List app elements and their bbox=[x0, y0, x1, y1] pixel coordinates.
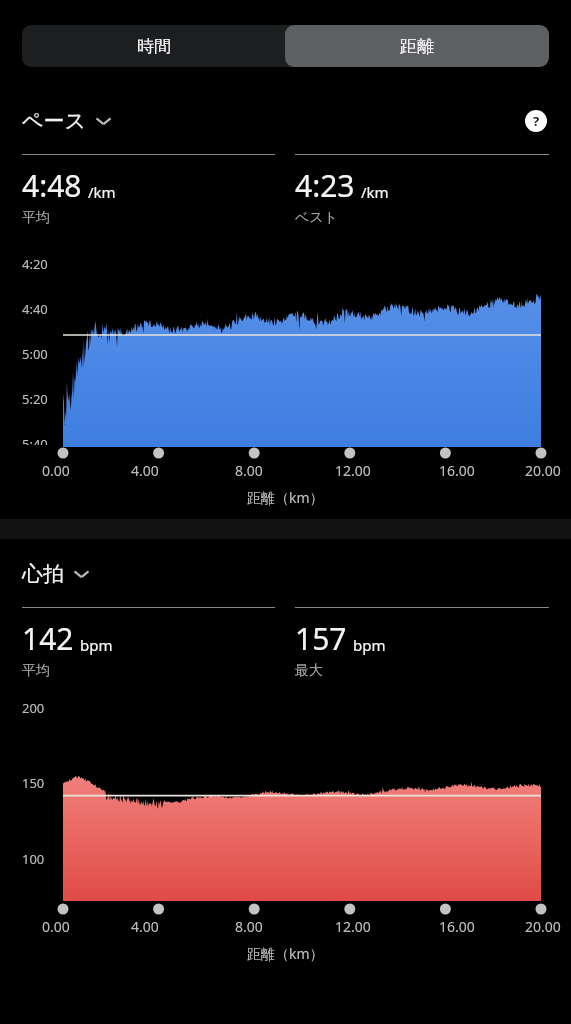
staticText: 距離（km） bbox=[247, 488, 324, 507]
staticText: 0.00 bbox=[42, 461, 70, 480]
button[interactable]: 距離 bbox=[285, 25, 549, 67]
staticText: 4:40 bbox=[22, 300, 48, 318]
staticText: 距離 bbox=[400, 36, 434, 57]
staticText: ベスト bbox=[295, 209, 338, 227]
staticText: bpm bbox=[353, 635, 386, 655]
staticText: 16.00 bbox=[439, 461, 475, 480]
button[interactable]: Help bbox=[523, 108, 549, 134]
staticText: 157 bbox=[295, 618, 347, 659]
staticText: 8.00 bbox=[235, 917, 263, 936]
staticText: /km bbox=[88, 182, 116, 202]
staticText: 時間 bbox=[137, 36, 171, 57]
staticText: 0.00 bbox=[42, 917, 70, 936]
staticText: 5:40 bbox=[22, 435, 48, 445]
staticText: 平均 bbox=[22, 662, 50, 680]
button[interactable]: 心拍 bbox=[22, 561, 90, 587]
staticText: 100 bbox=[22, 850, 45, 868]
staticText: 20.00 bbox=[525, 461, 561, 480]
staticText: 5:00 bbox=[22, 345, 48, 363]
staticText: 8.00 bbox=[235, 461, 263, 480]
staticText: 距離（km） bbox=[247, 944, 324, 963]
staticText: ペース bbox=[22, 108, 86, 134]
staticText: 4:23 bbox=[295, 165, 355, 206]
staticText: 4:20 bbox=[22, 255, 48, 273]
staticText: /km bbox=[361, 182, 389, 202]
staticText: 最大 bbox=[295, 662, 323, 680]
staticText: 平均 bbox=[22, 209, 50, 227]
button[interactable]: ペース bbox=[22, 108, 112, 134]
staticText: 4.00 bbox=[131, 917, 159, 936]
staticText: ? bbox=[533, 112, 540, 130]
staticText: 4.00 bbox=[131, 461, 159, 480]
staticText: 12.00 bbox=[335, 461, 371, 480]
staticText: 150 bbox=[22, 774, 45, 792]
staticText: bpm bbox=[80, 635, 113, 655]
staticText: 16.00 bbox=[439, 917, 475, 936]
staticText: 12.00 bbox=[335, 917, 371, 936]
staticText: 4:48 bbox=[22, 165, 82, 206]
staticText: 5:20 bbox=[22, 390, 48, 408]
staticText: 20.00 bbox=[525, 917, 561, 936]
staticText: 心拍 bbox=[22, 561, 64, 587]
staticText: 200 bbox=[22, 699, 45, 717]
button[interactable]: 時間 bbox=[22, 25, 285, 67]
staticText: 142 bbox=[22, 618, 74, 659]
